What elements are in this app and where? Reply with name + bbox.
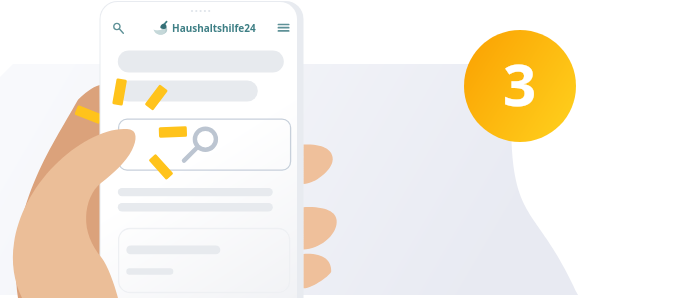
button[interactable]: Step 3 (464, 30, 576, 142)
staticText: 3 (503, 44, 537, 123)
staticText: Haushaltshilfe24 (172, 21, 256, 35)
